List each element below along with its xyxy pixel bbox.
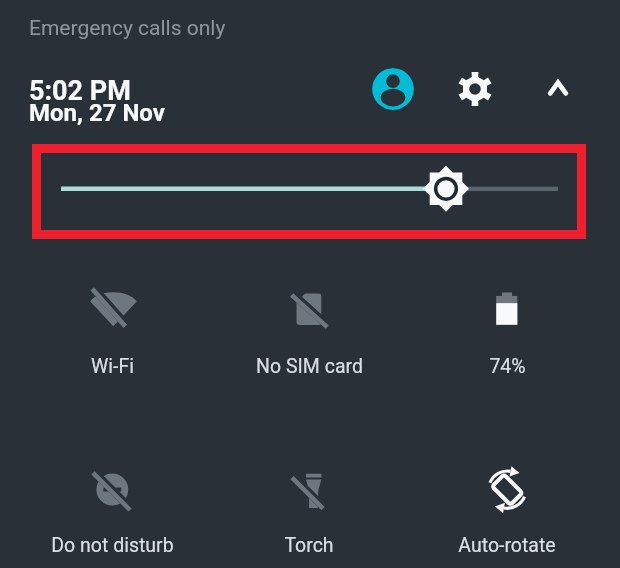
- button[interactable]: No SIM card: [214, 285, 404, 378]
- staticText: Mon, 27 Nov: [29, 99, 165, 127]
- staticText: Do not disturb: [51, 534, 174, 557]
- button[interactable]: Torch: [214, 464, 404, 557]
- button[interactable]: 74%: [412, 285, 602, 378]
- staticText: Torch: [284, 534, 334, 557]
- button[interactable]: User profile: [372, 68, 414, 110]
- button[interactable]: Do not disturb: [17, 464, 207, 557]
- staticText: Emergency calls only: [29, 16, 226, 41]
- staticText: Auto-rotate: [458, 534, 556, 557]
- button[interactable]: Wi-Fi: [17, 285, 207, 378]
- staticText: 5:02 PM: [29, 75, 131, 107]
- button[interactable]: Brightness slider: [32, 144, 586, 239]
- staticText: No SIM card: [256, 355, 363, 378]
- button[interactable]: Auto-rotate: [412, 464, 602, 557]
- button[interactable]: Collapse: [540, 70, 576, 106]
- button[interactable]: Settings: [455, 69, 495, 109]
- staticText: Wi-Fi: [91, 355, 134, 378]
- staticText: 74%: [489, 355, 526, 378]
